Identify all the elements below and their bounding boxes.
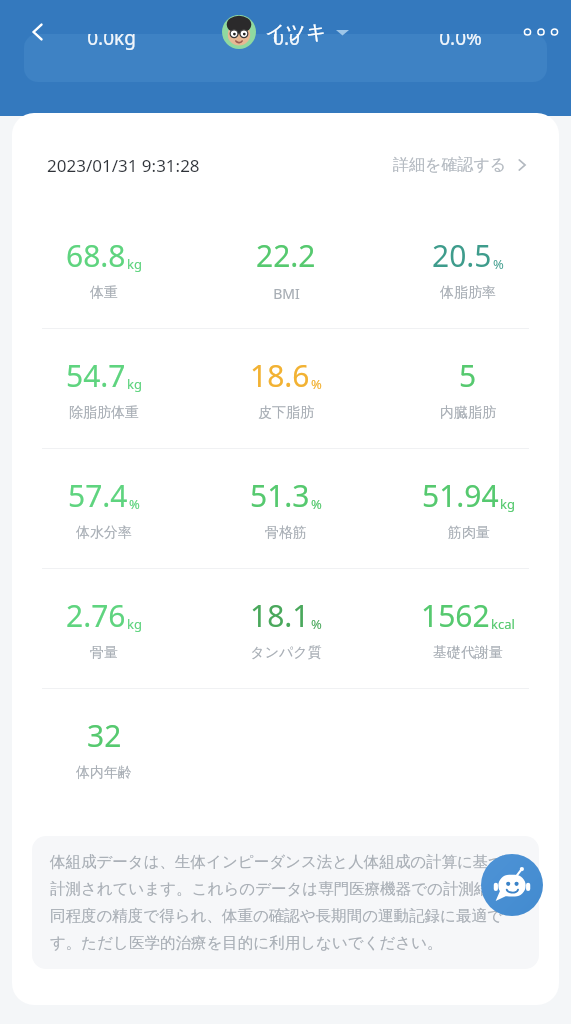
- staticText: kcal: [491, 615, 515, 633]
- staticText: 18.1: [250, 595, 310, 636]
- staticText: 57.4: [68, 475, 128, 516]
- staticText: BMI: [273, 284, 300, 303]
- staticText: 体水分率: [76, 524, 132, 542]
- button[interactable]: 18.1: [242, 591, 330, 666]
- staticText: 筋肉量: [448, 524, 490, 542]
- staticText: 基礎代謝量: [433, 644, 503, 662]
- staticText: 32: [87, 715, 122, 756]
- staticText: 骨格筋: [265, 524, 307, 542]
- staticText: kg: [127, 615, 142, 633]
- staticText: 5: [459, 355, 477, 396]
- staticText: %: [493, 255, 504, 273]
- button[interactable]: More options: [517, 8, 565, 56]
- staticText: 51.3: [250, 475, 310, 516]
- staticText: 体重: [90, 284, 118, 302]
- button[interactable]: 1562: [413, 591, 523, 666]
- button[interactable]: 68.8: [58, 231, 150, 306]
- button[interactable]: 20.5: [424, 231, 512, 306]
- button[interactable]: 詳細を確認する: [391, 151, 531, 179]
- staticText: イツキ: [265, 20, 327, 45]
- button[interactable]: Back: [14, 8, 62, 56]
- staticText: 皮下脂肪: [258, 404, 314, 422]
- button[interactable]: 54.7: [58, 351, 150, 426]
- staticText: 体脂肪率: [440, 284, 496, 302]
- button[interactable]: 18.6: [242, 351, 330, 426]
- button[interactable]: Chat assistant: [481, 854, 543, 916]
- button[interactable]: 32: [68, 711, 140, 786]
- staticText: 0.0kg: [87, 34, 136, 51]
- button[interactable]: 51.3: [242, 471, 330, 546]
- button[interactable]: 22.2: [248, 231, 324, 307]
- staticText: 54.7: [66, 355, 126, 396]
- staticText: kg: [127, 375, 142, 393]
- staticText: 0.0: [273, 34, 300, 51]
- staticText: 2023/01/31 9:31:28: [47, 154, 200, 177]
- staticText: 18.6: [250, 355, 310, 396]
- staticText: %: [311, 375, 322, 393]
- staticText: 68.8: [66, 235, 126, 276]
- staticText: %: [311, 615, 322, 633]
- staticText: 詳細を確認する: [393, 155, 507, 175]
- staticText: 1562: [421, 595, 490, 636]
- staticText: タンパク質: [250, 644, 322, 662]
- staticText: %: [311, 495, 322, 513]
- staticText: 51.94: [422, 475, 499, 516]
- staticText: kg: [127, 255, 142, 273]
- button[interactable]: 5: [432, 351, 504, 426]
- staticText: %: [129, 495, 140, 513]
- staticText: kg: [500, 495, 515, 513]
- staticText: 22.2: [256, 235, 316, 276]
- staticText: 体組成データは、生体インピーダンス法と人体組成の計算に基づき計測されています。こ…: [50, 852, 521, 953]
- staticText: 体内年齢: [76, 764, 132, 782]
- staticText: 20.5: [432, 235, 492, 276]
- staticText: 除脂肪体重: [69, 404, 139, 422]
- staticText: 2.76: [66, 595, 126, 636]
- button[interactable]: 57.4: [60, 471, 148, 546]
- button[interactable]: イツキ: [216, 8, 355, 56]
- staticText: 0.0%: [439, 34, 482, 51]
- button[interactable]: 2.76: [58, 591, 150, 666]
- button[interactable]: 51.94: [414, 471, 523, 546]
- staticText: 内臓脂肪: [440, 404, 496, 422]
- staticText: 骨量: [90, 644, 118, 662]
